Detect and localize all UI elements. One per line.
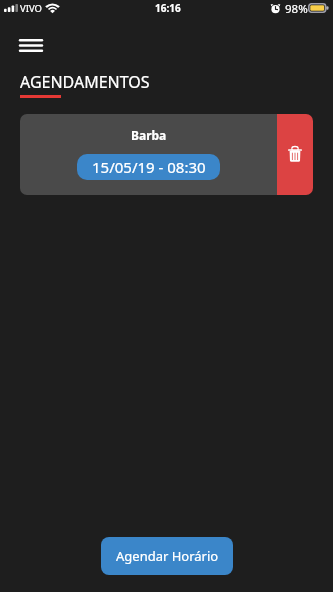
staticText: 16:16 [155,1,181,15]
staticText: 15/05/19 - 08:30 [92,157,206,177]
button[interactable]: Delete [277,114,313,195]
staticText: VIVO [20,2,42,15]
staticText: Agendar Horário [116,547,219,565]
staticText: 98% [285,1,308,17]
staticText: AGENDAMENTOS [20,71,150,93]
button[interactable]: Barba [20,114,277,195]
button[interactable]: Agendar Horário [101,537,233,575]
staticText: Barba [131,127,167,143]
button[interactable]: Menu [12,31,50,59]
